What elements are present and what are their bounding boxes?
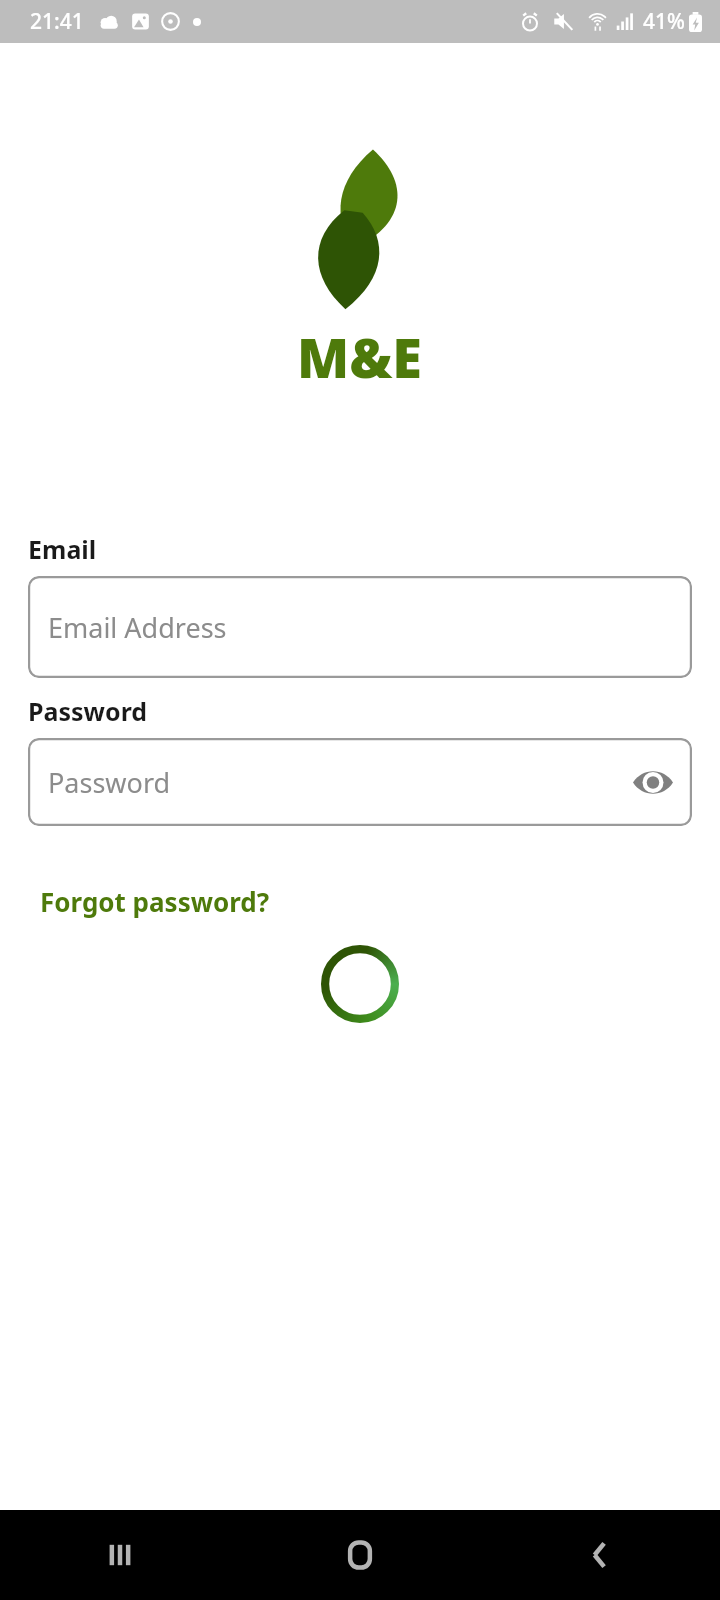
staticText: 41% <box>643 7 685 36</box>
button[interactable]: Password <box>28 738 692 826</box>
staticText: Forgot password? <box>40 884 270 919</box>
staticText: Email Address <box>48 609 227 646</box>
staticText: Password <box>48 764 171 801</box>
button[interactable]: Home <box>240 1510 480 1600</box>
staticText: M&E <box>297 320 423 394</box>
button[interactable]: Back <box>480 1510 720 1600</box>
button[interactable]: Recent apps <box>0 1510 240 1600</box>
staticText: 21:41 <box>30 7 84 36</box>
button[interactable]: Show password <box>630 759 676 805</box>
staticText: Password <box>28 694 148 728</box>
staticText: Email <box>28 532 97 566</box>
button[interactable]: Email Address <box>28 576 692 678</box>
button[interactable]: Forgot password? <box>34 878 276 925</box>
